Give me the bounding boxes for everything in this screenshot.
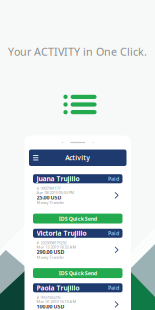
staticText: Paid [108, 175, 119, 182]
button[interactable]: IDS Quick Send [33, 268, 122, 278]
button[interactable]: Juana Trujillo [33, 174, 122, 208]
staticText: Apr 08 2019 05:53 PM [36, 190, 74, 195]
staticText: Activity [65, 153, 90, 162]
staticText: Money Transfer [36, 254, 64, 260]
staticText: Your ACTIVITY in One Click. [8, 44, 147, 59]
staticText: Mar 01 2019 16:19 AM [36, 299, 76, 304]
staticText: Mar 13 2019 18:32 AM [36, 244, 76, 249]
staticText: Victoria Trujillo [36, 229, 86, 238]
button[interactable]: Victoria Trujillo [33, 229, 122, 263]
staticText: # 2029098175292 [36, 240, 66, 245]
button[interactable]: IDS Quick Send [33, 214, 122, 223]
button[interactable]: Activity [29, 149, 126, 166]
staticText: 25.00 USD [36, 194, 61, 201]
staticText: 290.00 USD [36, 248, 64, 255]
staticText: Paid [108, 230, 119, 237]
staticText: IDS Quick Send [59, 215, 97, 222]
staticText: Paola Trujillo [36, 283, 79, 292]
staticText: # 9937042295 [36, 294, 60, 300]
staticText: IDS Quick Send [59, 269, 97, 277]
staticText: Juana Trujillo [36, 174, 79, 183]
staticText: Money Transfer [36, 200, 64, 205]
staticText: Paid [108, 284, 119, 291]
button[interactable]: Paola Trujillo [33, 283, 122, 310]
staticText: 100.00 USD [36, 303, 64, 310]
staticText: # 9907981177 [36, 185, 60, 191]
